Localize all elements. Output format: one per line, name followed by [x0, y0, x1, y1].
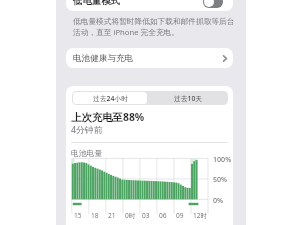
- button[interactable]: 过去10天: [148, 91, 228, 105]
- staticText: 06: [159, 211, 167, 220]
- staticText: 4分钟前: [71, 124, 103, 136]
- staticText: 12时: [193, 211, 208, 220]
- staticText: 0时: [125, 211, 136, 220]
- staticText: 21: [108, 211, 116, 220]
- staticText: 50%: [213, 174, 228, 184]
- button[interactable]: 过去24小时: [73, 92, 147, 104]
- button[interactable]: 电池健康与充电: [66, 48, 233, 68]
- staticText: 过去24小时: [93, 94, 128, 103]
- staticText: 电池健康与充电: [73, 53, 134, 64]
- button[interactable]: Low Power Mode: [203, 0, 223, 8]
- staticText: 低电量模式: [73, 0, 120, 7]
- staticText: 上次充电至88%: [71, 110, 145, 124]
- staticText: 电池电量: [71, 148, 103, 158]
- staticText: 0%: [213, 195, 224, 205]
- staticText: 03: [142, 211, 150, 220]
- button[interactable]: 低电量模式: [66, 0, 233, 11]
- staticText: 低电量模式将暂时降低如下载和邮件抓取等后台: [73, 17, 235, 27]
- staticText: 活动，直至 iPhone 完全充电。: [73, 27, 179, 38]
- staticText: 100%: [213, 154, 232, 164]
- staticText: 09: [176, 211, 184, 220]
- staticText: 过去10天: [174, 94, 203, 103]
- staticText: 15: [74, 211, 82, 220]
- staticText: 18: [91, 211, 99, 220]
